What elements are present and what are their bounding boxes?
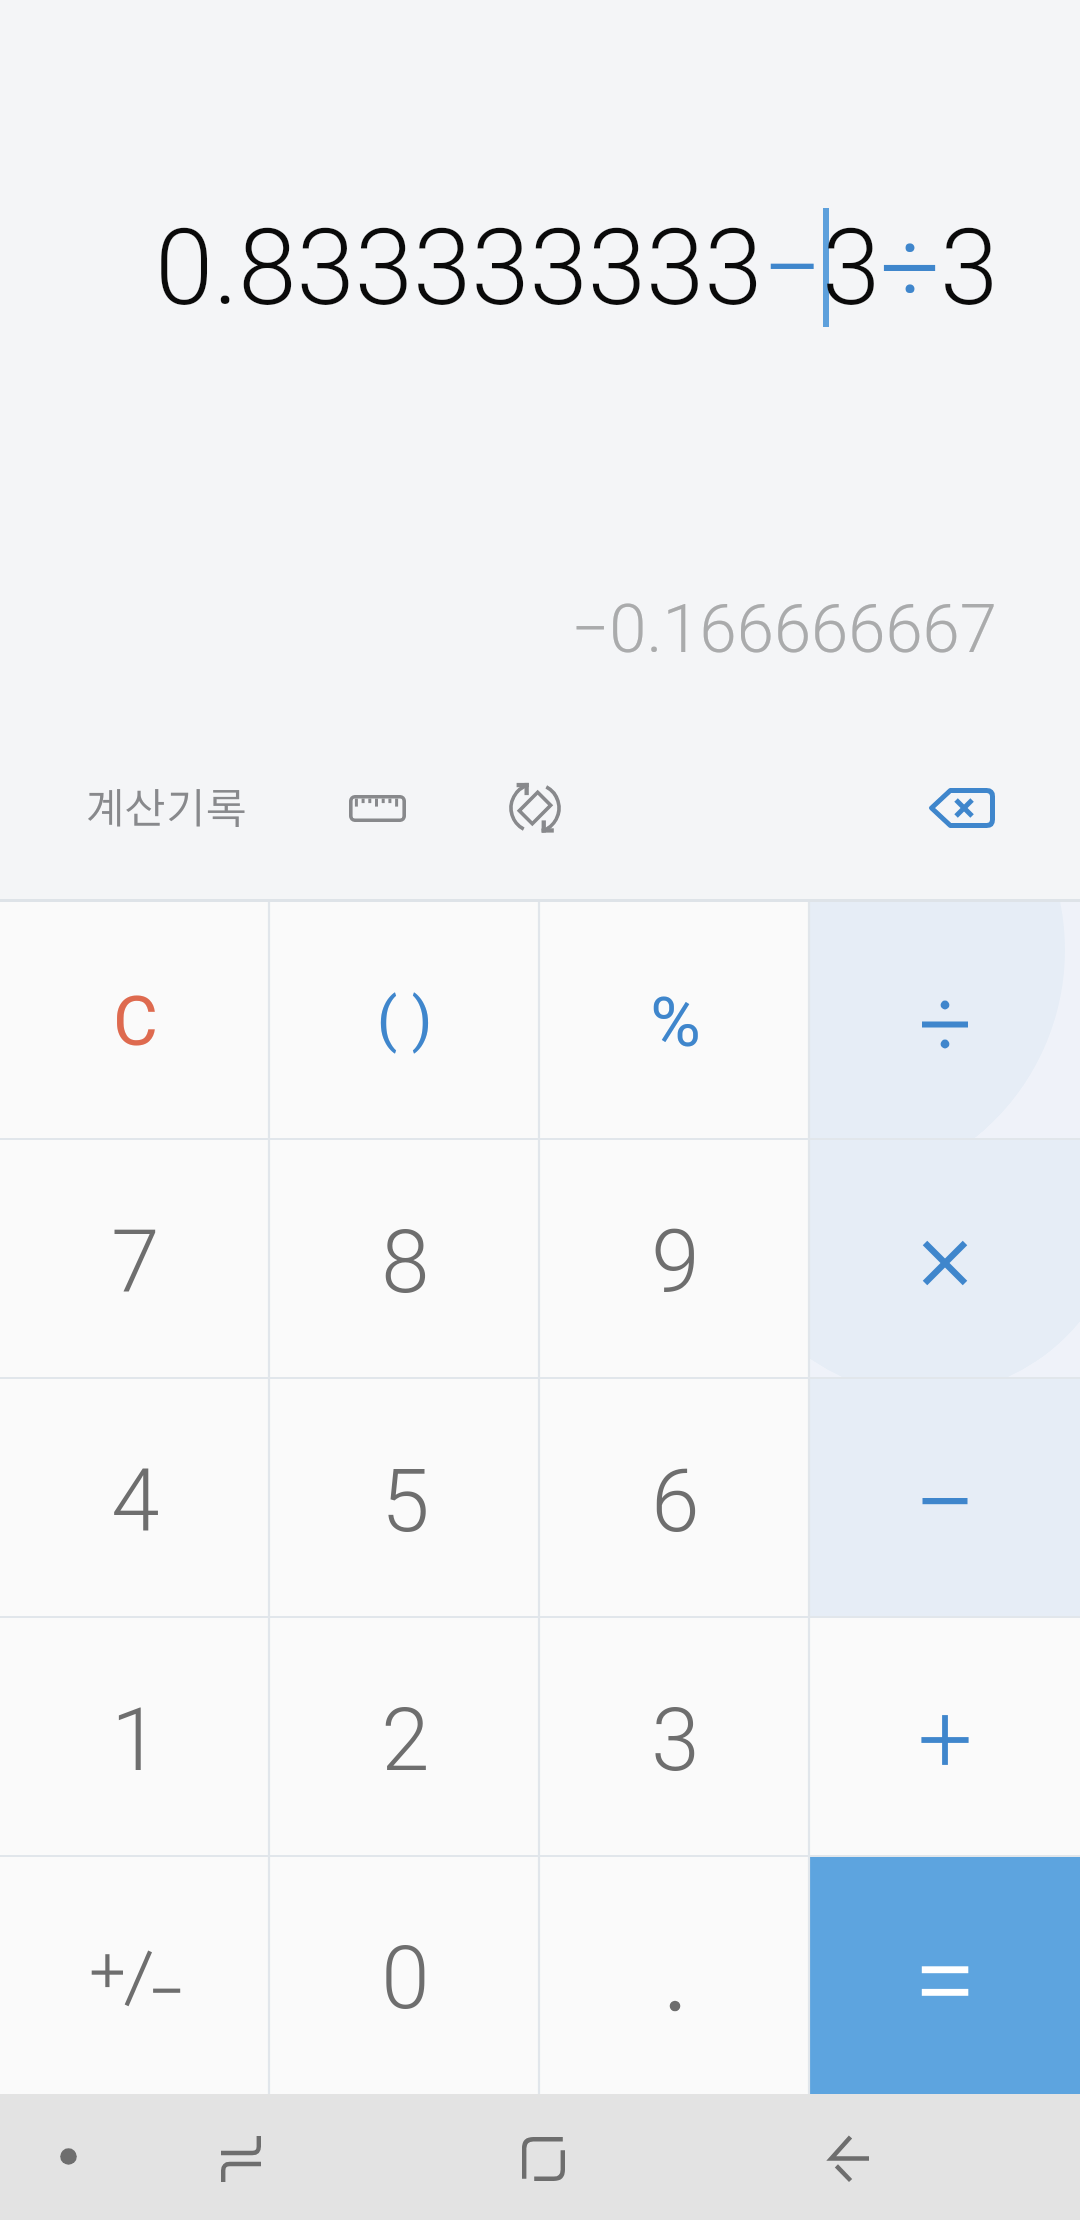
button[interactable]: % xyxy=(540,899,810,1138)
button[interactable]: 9 xyxy=(540,1138,810,1377)
staticText: 7 xyxy=(111,1211,160,1313)
button[interactable]: Backspace xyxy=(898,745,1024,871)
staticText: ( ) xyxy=(377,985,433,1054)
button[interactable]: Unit converter xyxy=(317,748,437,868)
button[interactable] xyxy=(810,899,1080,1138)
button[interactable]: Convert xyxy=(475,748,595,868)
button[interactable]: 3 xyxy=(540,1616,810,1855)
button[interactable]: 2 xyxy=(270,1616,540,1855)
button[interactable] xyxy=(0,1855,270,2094)
staticText: 2 xyxy=(381,1689,430,1791)
button[interactable]: 8 xyxy=(270,1138,540,1377)
staticText: 1 xyxy=(111,1689,160,1791)
button[interactable]: C xyxy=(0,899,270,1138)
button[interactable]: 7 xyxy=(0,1138,270,1377)
staticText: C xyxy=(113,981,158,1062)
button[interactable]: 4 xyxy=(0,1377,270,1616)
button[interactable] xyxy=(810,1616,1080,1855)
button[interactable]: ( ) xyxy=(270,899,540,1138)
staticText: 0.833333333− xyxy=(155,207,823,327)
button[interactable] xyxy=(810,1377,1080,1616)
staticText: 3÷3 xyxy=(822,207,999,327)
button[interactable] xyxy=(540,1855,810,2094)
staticText: 9 xyxy=(651,1211,700,1313)
button[interactable]: 계산기록 xyxy=(85,750,247,870)
button[interactable]: 1 xyxy=(0,1616,270,1855)
button[interactable] xyxy=(810,1855,1080,2094)
staticText: 5 xyxy=(381,1450,430,1552)
button[interactable] xyxy=(810,1138,1080,1377)
staticText: 6 xyxy=(651,1450,700,1552)
staticText: 4 xyxy=(111,1450,160,1552)
staticText: 8 xyxy=(381,1211,430,1313)
button[interactable]: Show keyboard xyxy=(18,2106,118,2206)
staticText: 계산기록 xyxy=(85,789,247,831)
button[interactable]: Recent apps xyxy=(186,2104,296,2214)
button[interactable]: Home xyxy=(488,2104,598,2214)
staticText: −0.166666667 xyxy=(571,590,997,669)
staticText: % xyxy=(650,982,701,1063)
button[interactable]: Back xyxy=(794,2104,904,2214)
button[interactable]: 0 xyxy=(270,1855,540,2094)
staticText: 3 xyxy=(651,1689,700,1791)
staticText: 0 xyxy=(381,1927,430,2029)
button[interactable]: 5 xyxy=(270,1377,540,1616)
button[interactable]: 6 xyxy=(540,1377,810,1616)
